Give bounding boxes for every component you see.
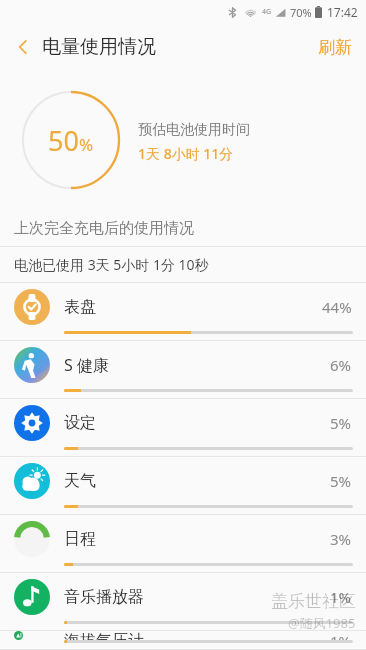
button[interactable]: 日程	[0, 515, 366, 573]
staticText: 刷新	[318, 37, 352, 58]
staticText: 海拔气压计	[64, 631, 144, 640]
staticText: 3%	[330, 529, 352, 549]
staticText: 1天 8小时 11分	[138, 144, 234, 163]
button[interactable]: Back	[6, 30, 40, 64]
button[interactable]: 海拔气压计	[0, 631, 366, 650]
staticText: 预估电池使用时间	[138, 121, 250, 139]
button[interactable]: 表盘	[0, 283, 366, 341]
staticText: 设定	[64, 413, 96, 433]
staticText: 50	[48, 122, 79, 159]
staticText: 4G	[262, 7, 272, 17]
staticText: 电池已使用 3天 5小时 1分 10秒	[14, 255, 209, 274]
staticText: 天气	[64, 471, 96, 491]
button[interactable]: S 健康	[0, 341, 366, 399]
staticText: 盖乐世社区	[271, 591, 356, 612]
staticText: 表盘	[64, 297, 96, 317]
staticText: 电量使用情况	[42, 35, 156, 59]
staticText: @随风1985	[288, 614, 356, 632]
staticText: 日程	[64, 529, 96, 549]
button[interactable]: 天气	[0, 457, 366, 515]
staticText: 5%	[330, 471, 352, 491]
staticText: 音乐播放器	[64, 587, 144, 607]
staticText: 70%	[290, 5, 312, 20]
button[interactable]: 设定	[0, 399, 366, 457]
staticText: 1%	[330, 631, 352, 640]
button[interactable]: 音乐播放器	[0, 573, 366, 631]
staticText: S 健康	[64, 354, 109, 376]
staticText: %	[79, 133, 94, 156]
staticText: 17:42	[327, 4, 358, 20]
staticText: 6%	[330, 355, 352, 375]
staticText: 5%	[330, 413, 352, 433]
staticText: 上次完全充电后的使用情况	[14, 219, 194, 238]
staticText: 1%	[330, 587, 352, 607]
staticText: 44%	[322, 297, 352, 317]
button[interactable]: 刷新	[312, 31, 358, 64]
